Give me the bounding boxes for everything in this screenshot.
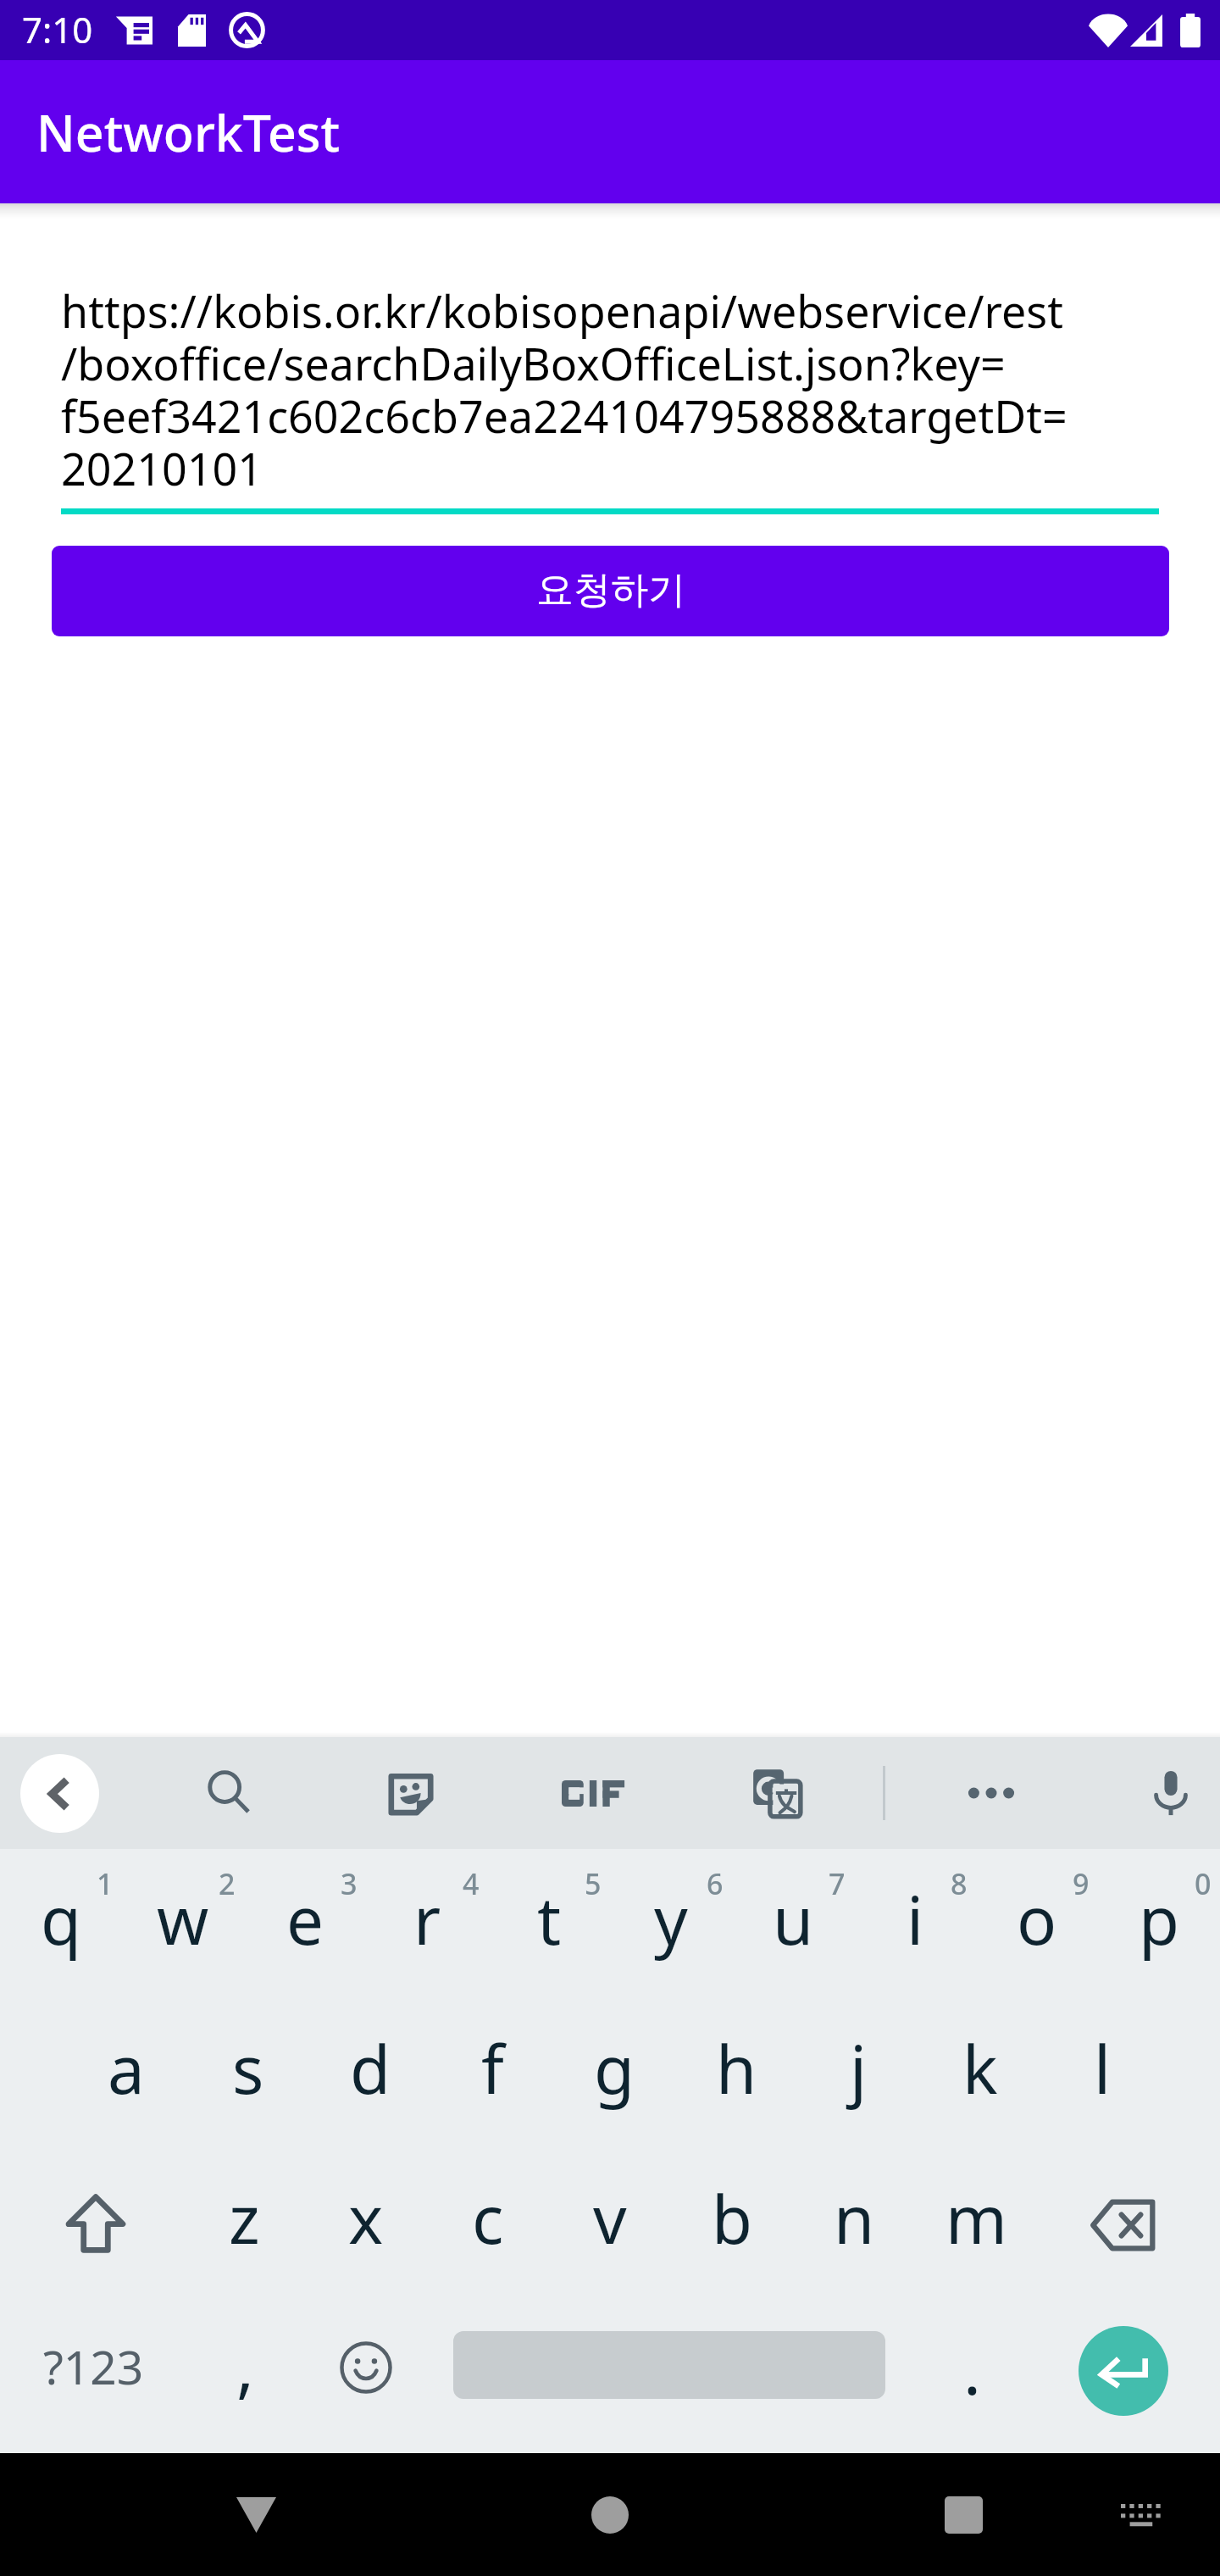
button[interactable]: Backspace	[1037, 2149, 1220, 2299]
staticText: w	[157, 1874, 209, 1964]
button[interactable]: Shift	[0, 2149, 183, 2299]
staticText: .	[963, 2324, 981, 2414]
staticText: ?123	[43, 2334, 144, 2398]
button[interactable]: Stickers	[364, 1746, 457, 1840]
staticText: s	[232, 2024, 264, 2113]
button[interactable]: m	[915, 2149, 1037, 2299]
button[interactable]: i	[854, 1849, 976, 1999]
staticText: 1	[97, 1864, 114, 1903]
button[interactable]: u	[732, 1849, 854, 1999]
button[interactable]: c	[427, 2149, 549, 2299]
staticText: d	[350, 2024, 391, 2113]
staticText: n	[834, 2173, 875, 2263]
button[interactable]: y	[610, 1849, 732, 1999]
staticText: t	[537, 1874, 562, 1964]
button[interactable]: x	[305, 2149, 427, 2299]
button[interactable]: Close keyboard toolbar	[20, 1754, 99, 1833]
button[interactable]: z	[183, 2149, 305, 2299]
button[interactable]: o	[976, 1849, 1098, 1999]
staticText: v	[593, 2173, 627, 2263]
staticText: u	[773, 1874, 814, 1964]
staticText: 3	[341, 1864, 358, 1903]
button[interactable]: 요청하기	[52, 546, 1169, 636]
button[interactable]: a	[65, 1999, 187, 2149]
staticText: 8	[951, 1864, 968, 1903]
staticText: 5	[585, 1864, 602, 1903]
staticText: f	[481, 2024, 504, 2113]
staticText: 6	[707, 1864, 724, 1903]
button[interactable]: g	[553, 1999, 675, 2149]
button[interactable]: Back	[218, 2477, 294, 2553]
button[interactable]: Enter	[1079, 2326, 1168, 2416]
staticText: o	[1017, 1874, 1057, 1964]
button[interactable]: e	[244, 1849, 366, 1999]
button[interactable]: More options	[945, 1746, 1038, 1840]
button[interactable]: Voice input	[1124, 1746, 1217, 1840]
button[interactable]: GIF	[545, 1746, 638, 1840]
button[interactable]: Recent apps	[925, 2477, 1001, 2553]
staticText: 0	[1195, 1864, 1212, 1903]
staticText: k	[962, 2024, 998, 2113]
staticText: NetworkTest	[36, 98, 341, 166]
button[interactable]: s	[187, 1999, 309, 2149]
button[interactable]: Search	[183, 1746, 276, 1840]
staticText: l	[1094, 2024, 1112, 2113]
button[interactable]: .	[911, 2292, 1033, 2446]
staticText: b	[712, 2173, 752, 2263]
staticText: 7	[829, 1864, 846, 1903]
staticText: a	[108, 2024, 145, 2113]
button[interactable]: d	[309, 1999, 431, 2149]
button[interactable]: Home	[572, 2477, 648, 2553]
staticText: 7:10	[22, 5, 93, 53]
staticText: https://kobis.or.kr/kobisopenapi/webserv…	[61, 280, 1169, 498]
button[interactable]: Space	[453, 2331, 885, 2399]
staticText: ,	[236, 2321, 254, 2411]
button[interactable]: t	[488, 1849, 610, 1999]
button[interactable]: Switch keyboard	[1102, 2477, 1178, 2553]
button[interactable]: h	[675, 1999, 797, 2149]
staticText: g	[594, 2024, 635, 2113]
button[interactable]: j	[797, 1999, 919, 2149]
staticText: 요청하기	[536, 567, 685, 613]
staticText: 9	[1073, 1864, 1090, 1903]
staticText: m	[945, 2173, 1007, 2263]
staticText: p	[1139, 1874, 1179, 1964]
staticText: e	[286, 1874, 324, 1964]
button[interactable]: q	[0, 1849, 122, 1999]
button[interactable]: v	[549, 2149, 671, 2299]
button[interactable]: p	[1098, 1849, 1220, 1999]
staticText: q	[41, 1874, 81, 1964]
button[interactable]: w	[122, 1849, 244, 1999]
button[interactable]: k	[919, 1999, 1041, 2149]
button[interactable]: ?123	[2, 2289, 185, 2443]
staticText: i	[907, 1874, 924, 1964]
staticText: z	[229, 2173, 260, 2263]
button[interactable]: r	[366, 1849, 488, 1999]
button[interactable]: b	[671, 2149, 793, 2299]
staticText: x	[348, 2173, 384, 2263]
staticText: 2	[219, 1864, 236, 1903]
staticText: r	[413, 1874, 441, 1964]
button[interactable]: n	[793, 2149, 915, 2299]
button[interactable]: l	[1041, 1999, 1163, 2149]
staticText: y	[654, 1874, 688, 1964]
staticText: 4	[463, 1864, 480, 1903]
button[interactable]: Translate	[730, 1746, 823, 1840]
button[interactable]: ,	[184, 2289, 306, 2443]
staticText: c	[472, 2173, 504, 2263]
staticText: h	[716, 2024, 757, 2113]
staticText: j	[850, 2024, 868, 2113]
button[interactable]: f	[431, 1999, 553, 2149]
button[interactable]: Emoji	[305, 2290, 427, 2445]
